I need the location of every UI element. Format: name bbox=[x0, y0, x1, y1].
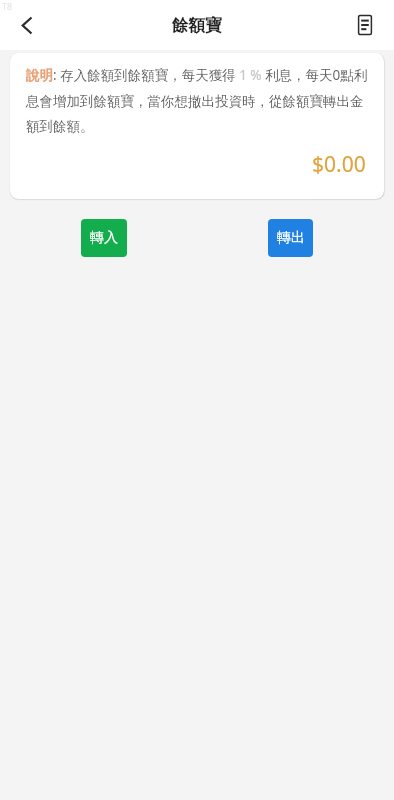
button[interactable]: 轉入 bbox=[81, 219, 127, 257]
staticText: T8 bbox=[2, 0, 13, 12]
staticText: 轉入 bbox=[90, 229, 118, 247]
button[interactable]: 轉出 bbox=[268, 219, 313, 257]
button[interactable]: Records bbox=[344, 4, 386, 46]
button[interactable]: Back bbox=[4, 3, 48, 47]
staticText: 餘額寶 bbox=[172, 15, 222, 36]
staticText: $0.00 bbox=[312, 150, 366, 179]
staticText: 轉出 bbox=[277, 229, 305, 247]
staticText: 說明: 存入餘額到餘額寶，每天獲得 1 % 利息，每天0點利息會增加到餘額寶，當… bbox=[26, 66, 369, 135]
